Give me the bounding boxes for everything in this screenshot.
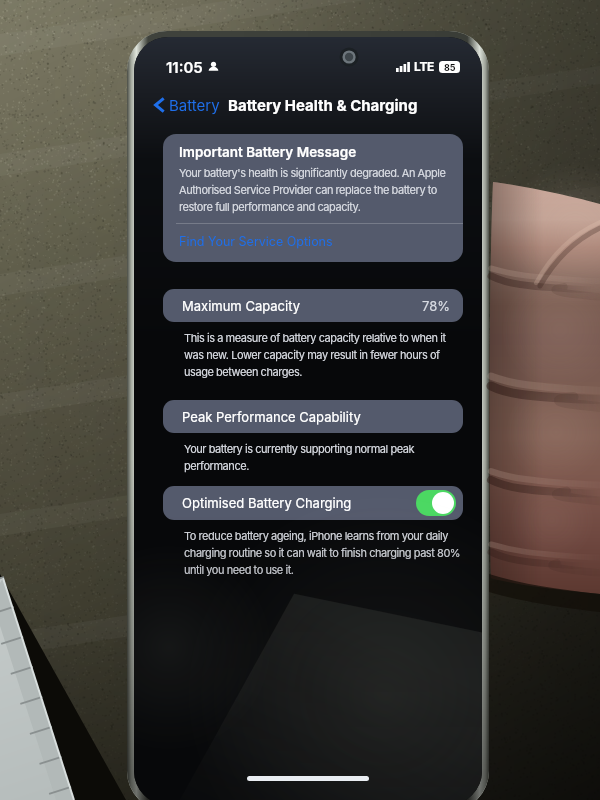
staticText: Important Battery Message [179,144,357,160]
staticText: Battery Health & Charging [228,96,418,114]
button[interactable]: Optimised Battery Charging toggle [416,490,456,516]
staticText: Find Your Service Options [179,234,333,249]
button[interactable]: Important Battery Message [163,134,463,262]
button[interactable]: Maximum Capacity [163,289,463,322]
staticText: Maximum Capacity [182,298,300,314]
staticText: This is a measure of battery capacity re… [184,331,446,379]
button[interactable]: Optimised Battery Charging [163,486,463,520]
button[interactable]: Battery [154,91,220,119]
staticText: Your battery is currently supporting nor… [184,442,415,473]
staticText: 11:05 [166,58,203,76]
staticText: 85 [444,62,456,73]
staticText: LTE [414,59,435,74]
staticText: Your battery's health is significantly d… [179,166,446,214]
staticText: Peak Performance Capability [182,409,361,425]
staticText: Optimised Battery Charging [182,495,352,511]
staticText: Battery [169,96,220,114]
staticText: To reduce battery ageing, iPhone learns … [184,529,461,577]
button[interactable]: Peak Performance Capability [163,400,463,433]
staticText: 78% [422,298,450,314]
